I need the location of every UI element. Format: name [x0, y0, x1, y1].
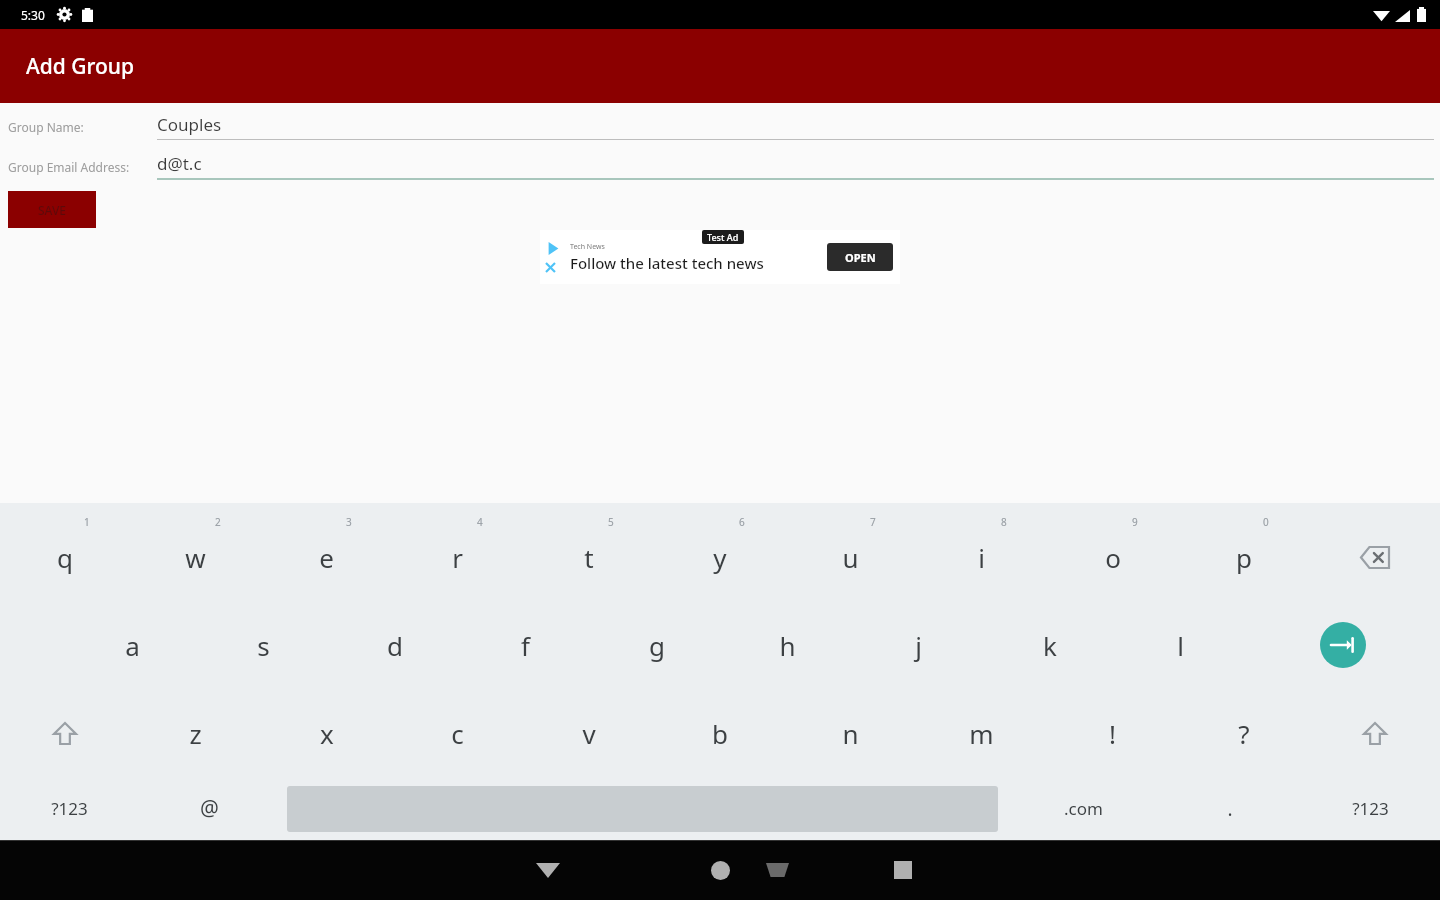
staticText: 7: [870, 515, 876, 529]
button[interactable]: o: [1047, 513, 1178, 601]
button[interactable]: d: [329, 601, 460, 689]
button[interactable]: p: [1178, 513, 1309, 601]
staticText: ?123: [51, 797, 88, 820]
staticText: c: [451, 716, 464, 751]
staticText: d: [387, 628, 403, 663]
staticText: 9: [1132, 515, 1138, 529]
staticText: 1: [84, 515, 90, 529]
button[interactable]: f: [460, 601, 591, 689]
button[interactable]: n: [785, 689, 916, 777]
button[interactable]: v: [523, 689, 654, 777]
button[interactable]: q: [0, 513, 130, 601]
staticText: Follow the latest tech news: [570, 253, 764, 273]
button[interactable]: i: [916, 513, 1047, 601]
button[interactable]: ?123: [0, 777, 139, 840]
button[interactable]: h: [722, 601, 853, 689]
staticText: OPEN: [845, 250, 876, 265]
button[interactable]: Shift: [1309, 689, 1440, 777]
staticText: Tech News: [570, 242, 605, 252]
staticText: 0: [1263, 515, 1269, 529]
button[interactable]: !: [1047, 689, 1178, 777]
button[interactable]: ?123: [1300, 777, 1440, 840]
button[interactable]: Shift: [0, 689, 130, 777]
button[interactable]: Couples: [157, 113, 1434, 140]
staticText: SAVE: [38, 202, 67, 218]
button[interactable]: b: [654, 689, 785, 777]
staticText: Add Group: [26, 52, 135, 81]
button[interactable]: Tech News: [540, 230, 900, 284]
button[interactable]: m: [916, 689, 1047, 777]
staticText: h: [779, 628, 796, 663]
staticText: Test Ad: [707, 231, 739, 243]
button[interactable]: .: [1160, 777, 1300, 840]
button[interactable]: w: [130, 513, 261, 601]
button[interactable]: y: [654, 513, 785, 601]
staticText: t: [584, 540, 594, 575]
staticText: q: [57, 540, 73, 575]
button[interactable]: d@t.c: [157, 152, 1434, 180]
staticText: 2: [215, 515, 221, 529]
button[interactable]: a: [67, 601, 198, 689]
button[interactable]: Hide keyboard: [524, 846, 572, 894]
staticText: n: [842, 716, 859, 751]
staticText: p: [1236, 540, 1252, 575]
staticText: z: [189, 716, 202, 751]
staticText: Group Name:: [8, 119, 84, 135]
staticText: .com: [1064, 797, 1103, 820]
button[interactable]: x: [261, 689, 392, 777]
staticText: x: [320, 716, 334, 751]
button[interactable]: j: [853, 601, 984, 689]
button[interactable]: r: [392, 513, 523, 601]
staticText: 8: [1001, 515, 1007, 529]
button[interactable]: c: [392, 689, 523, 777]
staticText: 5:30: [21, 7, 45, 23]
staticText: .: [1227, 796, 1233, 822]
staticText: y: [713, 540, 727, 575]
staticText: 5: [608, 515, 614, 529]
button[interactable]: Switch keyboard: [753, 846, 801, 894]
staticText: !: [1109, 716, 1116, 751]
button[interactable]: g: [591, 601, 722, 689]
button[interactable]: t: [523, 513, 654, 601]
staticText: j: [915, 628, 922, 663]
staticText: v: [582, 716, 596, 751]
staticText: s: [257, 628, 270, 663]
staticText: ?123: [1352, 797, 1389, 820]
button[interactable]: Backspace: [1309, 513, 1440, 601]
button[interactable]: Recent apps: [879, 846, 927, 894]
staticText: f: [521, 628, 530, 663]
staticText: w: [185, 540, 206, 575]
staticText: m: [969, 716, 994, 751]
staticText: k: [1043, 628, 1057, 663]
button[interactable]: .com: [1006, 777, 1160, 840]
staticText: l: [1177, 628, 1184, 663]
button[interactable]: @: [139, 777, 279, 840]
staticText: i: [978, 540, 985, 575]
button[interactable]: e: [261, 513, 392, 601]
staticText: o: [1105, 540, 1121, 575]
staticText: d@t.c: [157, 152, 202, 175]
button[interactable]: l: [1115, 601, 1246, 689]
button[interactable]: Next: [1246, 601, 1440, 689]
staticText: g: [649, 628, 665, 663]
staticText: e: [319, 540, 334, 575]
button[interactable]: k: [984, 601, 1115, 689]
staticText: 3: [346, 515, 352, 529]
button[interactable]: Home: [696, 846, 744, 894]
button[interactable]: u: [785, 513, 916, 601]
staticText: u: [842, 540, 859, 575]
staticText: b: [712, 716, 728, 751]
staticText: ?: [1238, 716, 1250, 751]
staticText: 4: [477, 515, 483, 529]
staticText: a: [125, 628, 140, 663]
button[interactable]: s: [198, 601, 329, 689]
staticText: @: [200, 794, 219, 823]
button[interactable]: ?: [1178, 689, 1309, 777]
button[interactable]: Space: [279, 777, 1006, 840]
staticText: r: [452, 540, 463, 575]
staticText: Couples: [157, 113, 222, 136]
button[interactable]: OPEN: [827, 243, 893, 271]
staticText: 6: [739, 515, 745, 529]
button[interactable]: SAVE: [8, 191, 96, 228]
button[interactable]: z: [130, 689, 261, 777]
